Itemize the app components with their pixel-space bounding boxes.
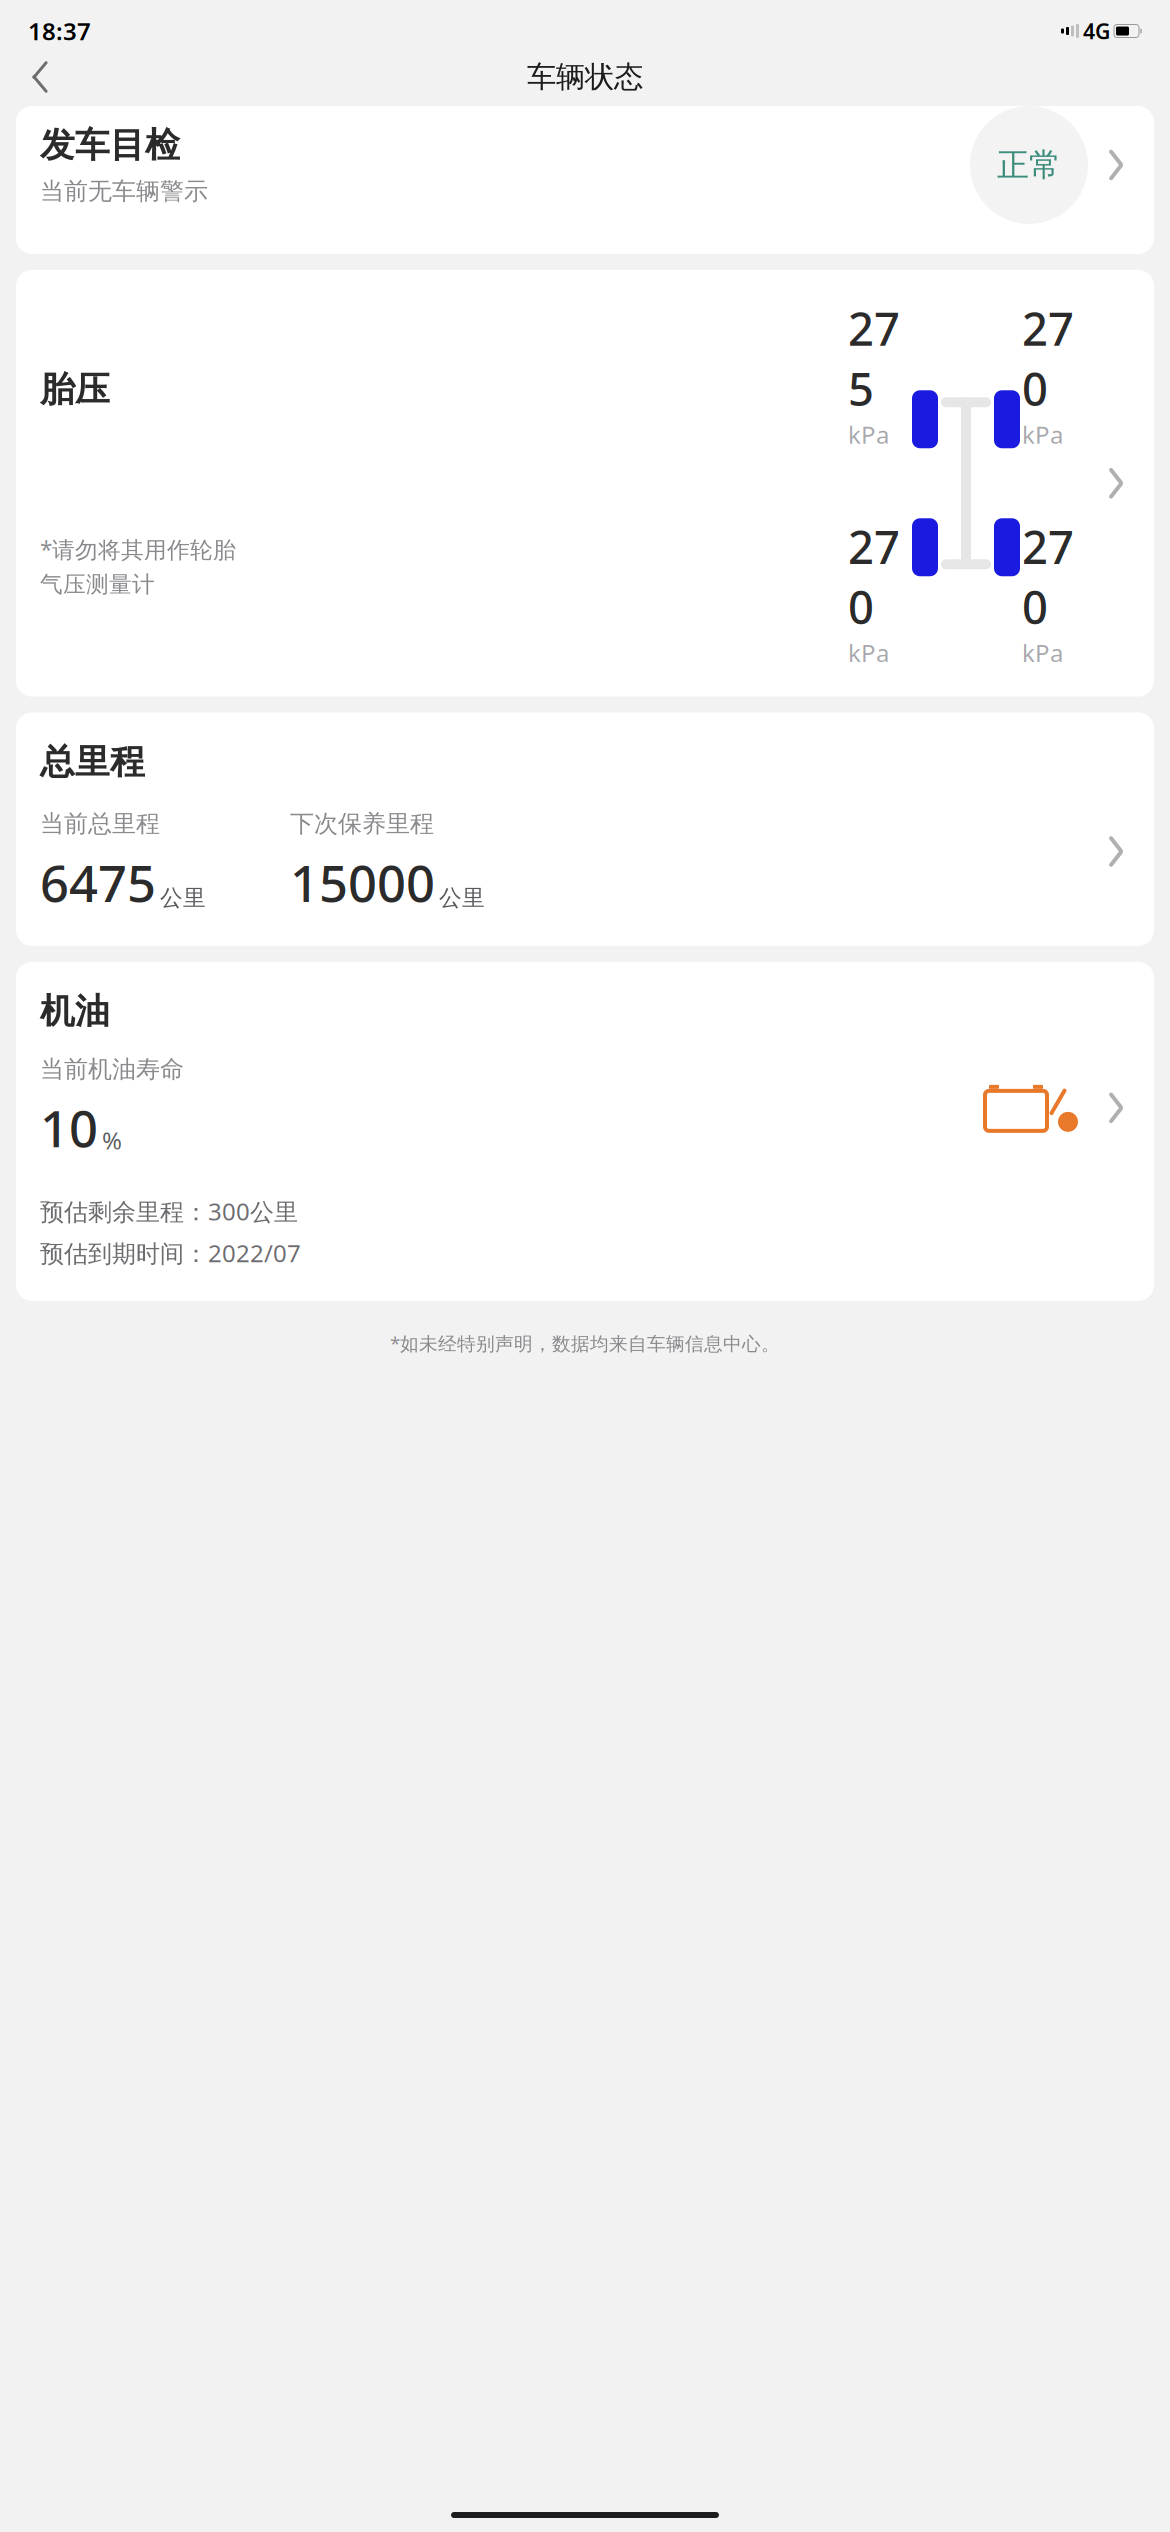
staticText: 预估剩余里程：300公里 [40,1195,298,1227]
staticText: % [102,1124,122,1156]
staticText: 车辆状态 [527,59,643,95]
staticText: kPa [848,637,889,669]
staticText: 当前总里程 [40,809,160,839]
staticText: 当前无车辆警示 [40,177,208,206]
staticText: kPa [1022,637,1063,669]
staticText: 总里程 [40,740,145,783]
staticText: 公里 [160,884,206,912]
staticText: kPa [848,418,889,450]
staticText: 预估到期时间：2022/07 [40,1237,301,1269]
staticText: 6475 [40,849,156,916]
staticText: 机油 [40,990,110,1032]
staticText: 18:37 [28,15,91,47]
staticText: 270 [1022,516,1074,637]
staticText: 15000 [290,849,435,916]
staticText: 4G [1083,17,1110,45]
staticText: *请勿将其用作轮胎 [40,534,236,564]
staticText: 发车目检 [40,124,180,167]
staticText: 正常 [997,145,1061,185]
button[interactable]: 总里程 [16,712,1154,946]
staticText: 270 [848,516,900,637]
button[interactable]: 发车目检 [16,106,1154,254]
staticText: 气压测量计 [40,570,155,598]
staticText: 270 [1022,298,1074,418]
staticText: 当前机油寿命 [40,1054,184,1084]
staticText: 10 [40,1094,98,1161]
staticText: 275 [848,298,900,418]
staticText: *如未经特别声明，数据均来自车辆信息中心。 [390,1331,780,1356]
staticText: kPa [1022,418,1063,450]
staticText: 公里 [439,884,485,912]
staticText: 胎压 [40,368,110,411]
staticText: 下次保养里程 [290,809,434,839]
button[interactable]: 机油 [16,962,1154,1301]
button[interactable]: 胎压 [16,270,1154,696]
button[interactable]: 返回 [14,51,66,103]
